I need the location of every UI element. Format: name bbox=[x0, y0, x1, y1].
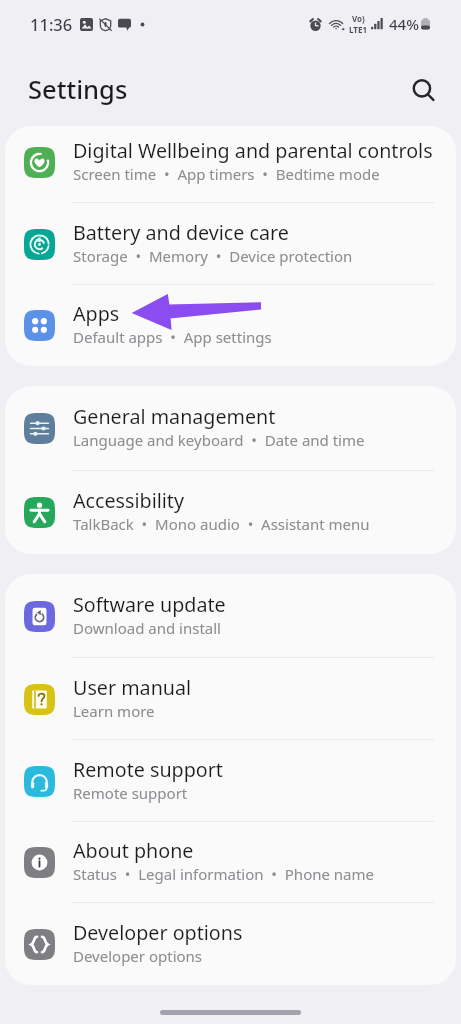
staticText: Remote support bbox=[73, 756, 223, 783]
button[interactable]: Apps bbox=[5, 285, 456, 366]
staticText: General management bbox=[73, 403, 276, 430]
staticText: Download and install bbox=[73, 618, 221, 638]
staticText: Settings bbox=[28, 72, 128, 107]
staticText: Language and keyboard • Date and time bbox=[73, 430, 365, 450]
button[interactable]: Search bbox=[404, 71, 444, 111]
staticText: TalkBack • Mono audio • Assistant menu bbox=[73, 514, 370, 534]
staticText: Default apps • App settings bbox=[73, 327, 272, 347]
staticText: Digital Wellbeing and parental controls bbox=[73, 137, 433, 164]
staticText: LTE1 bbox=[349, 24, 367, 35]
button[interactable]: Battery and device care bbox=[5, 203, 456, 285]
staticText: Accessibility bbox=[73, 487, 185, 514]
staticText: Vo) bbox=[352, 13, 365, 24]
staticText: Developer options bbox=[73, 919, 243, 946]
staticText: 44% bbox=[389, 14, 419, 34]
staticText: Software update bbox=[73, 591, 226, 618]
button[interactable]: Developer options bbox=[5, 903, 456, 985]
staticText: About phone bbox=[73, 837, 194, 864]
button[interactable]: Remote support bbox=[5, 740, 456, 822]
staticText: 11:36 bbox=[30, 13, 73, 35]
button[interactable]: Digital Wellbeing and parental controls bbox=[5, 126, 456, 203]
staticText: Battery and device care bbox=[73, 219, 289, 246]
staticText: Apps bbox=[73, 300, 120, 327]
staticText: User manual bbox=[73, 674, 192, 701]
button[interactable]: About phone bbox=[5, 822, 456, 903]
button[interactable]: Software update bbox=[5, 574, 456, 658]
staticText: Status • Legal information • Phone name bbox=[73, 864, 375, 884]
staticText: Screen time • App timers • Bedtime mode bbox=[73, 164, 380, 184]
button[interactable]: General management bbox=[5, 386, 456, 471]
staticText: Remote support bbox=[73, 783, 188, 803]
button[interactable]: Accessibility bbox=[5, 471, 456, 554]
staticText: Storage • Memory • Device protection bbox=[73, 246, 353, 266]
staticText: Developer options bbox=[73, 946, 203, 966]
staticText: Learn more bbox=[73, 701, 155, 721]
button[interactable]: User manual bbox=[5, 658, 456, 740]
